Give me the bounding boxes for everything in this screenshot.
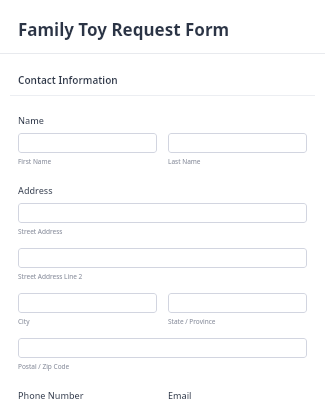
button[interactable] — [18, 338, 307, 358]
staticText: Email — [168, 389, 192, 400]
staticText: Address — [18, 184, 53, 196]
staticText: Family Toy Request Form — [18, 18, 230, 41]
button[interactable] — [18, 133, 157, 153]
button[interactable] — [18, 248, 307, 268]
button[interactable] — [168, 293, 307, 313]
staticText: Street Address — [18, 227, 63, 236]
staticText: Postal / Zip Code — [18, 362, 70, 371]
staticText: First Name — [18, 157, 52, 166]
staticText: Contact Information — [18, 73, 118, 87]
staticText: Last Name — [168, 157, 201, 166]
button[interactable] — [18, 203, 307, 223]
button[interactable] — [18, 293, 157, 313]
staticText: State / Province — [168, 317, 216, 326]
staticText: Phone Number — [18, 389, 84, 400]
button[interactable] — [168, 133, 307, 153]
staticText: Name — [18, 114, 44, 126]
staticText: City — [18, 317, 30, 326]
staticText: Street Address Line 2 — [18, 272, 83, 281]
